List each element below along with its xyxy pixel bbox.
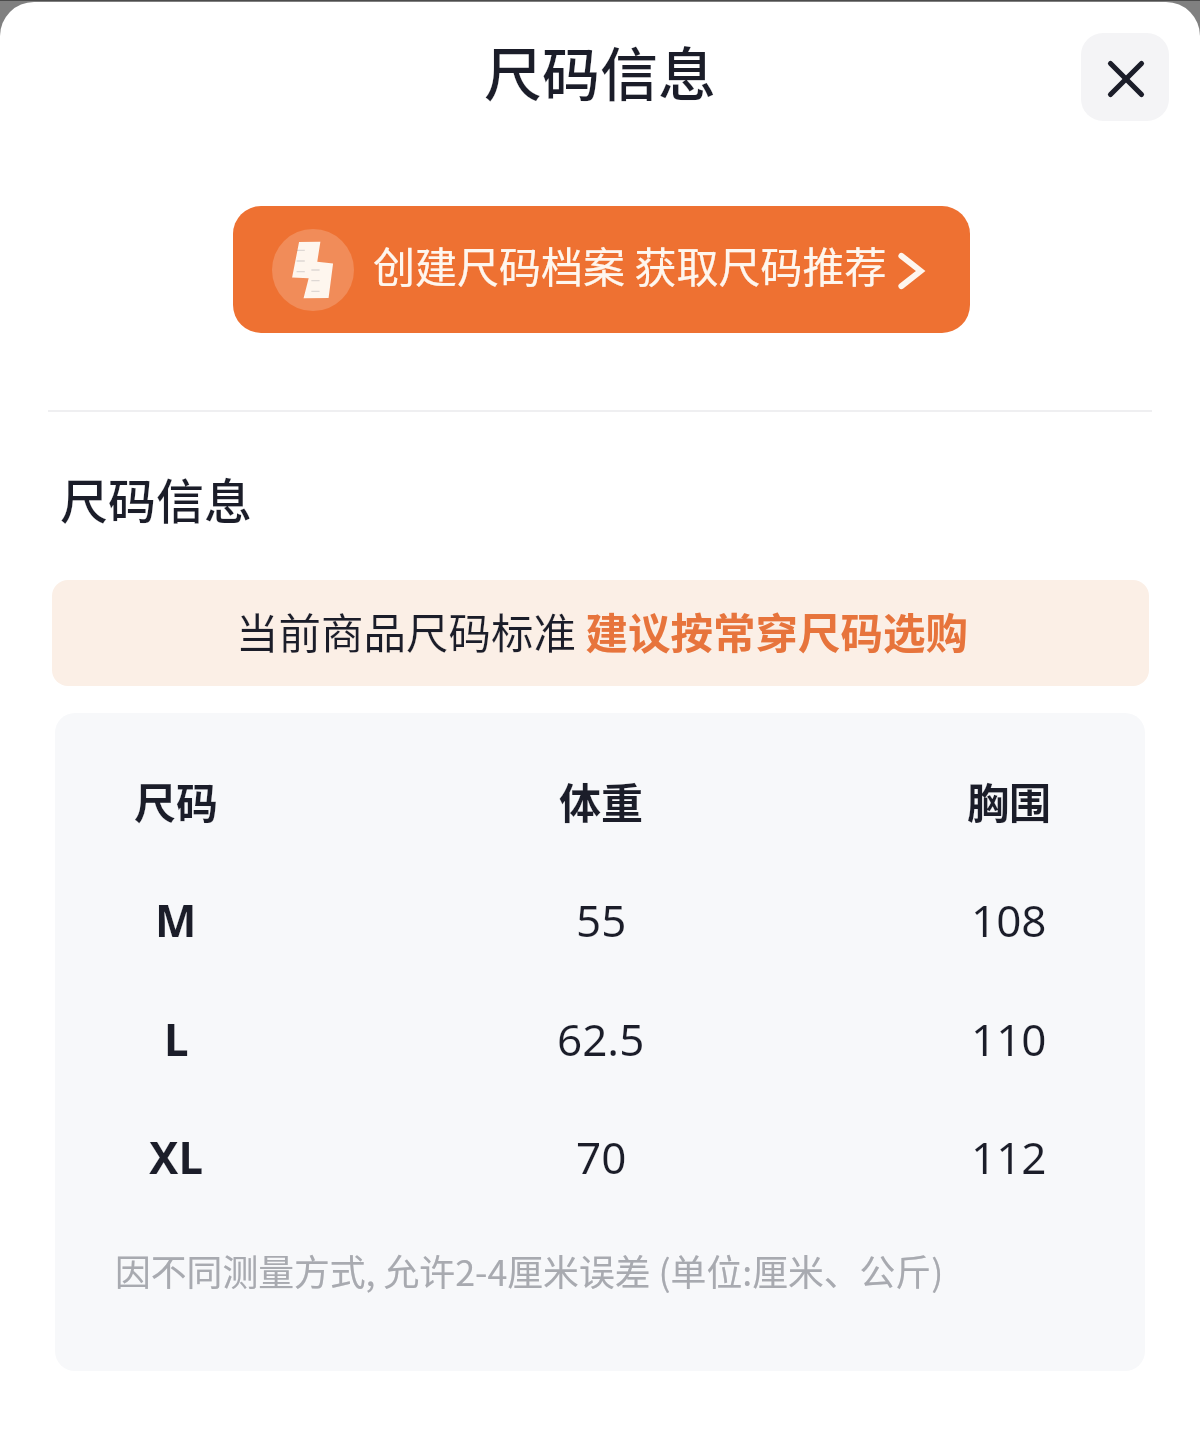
- staticText: XL: [149, 1127, 204, 1187]
- staticText: 尺码信息: [60, 463, 253, 533]
- staticText: 尺码信息: [484, 29, 717, 113]
- staticText: 当前商品尺码标准 建议按常穿尺码选购: [236, 600, 969, 662]
- staticText: 体重: [559, 770, 644, 831]
- button[interactable]: 创建尺码档案 获取尺码推荐: [233, 206, 970, 333]
- staticText: 因不同测量方式, 允许2-4厘米误差 (单位:厘米、公斤): [115, 1244, 944, 1296]
- staticText: L: [164, 1009, 189, 1069]
- staticText: 尺码: [134, 770, 219, 831]
- staticText: 62.5: [557, 1009, 645, 1069]
- button[interactable]: Close: [1081, 33, 1169, 121]
- staticText: 110: [971, 1009, 1047, 1069]
- staticText: 55: [576, 890, 627, 950]
- staticText: M: [155, 890, 197, 950]
- staticText: 108: [971, 890, 1047, 950]
- staticText: 70: [576, 1127, 627, 1187]
- staticText: 创建尺码档案 获取尺码推荐: [373, 234, 887, 295]
- staticText: 112: [971, 1127, 1047, 1187]
- staticText: 胸围: [967, 770, 1052, 831]
